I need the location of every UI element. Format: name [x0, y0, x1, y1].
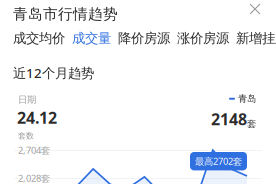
- button[interactable]: 成交量: [72, 30, 111, 46]
- staticText: 2,028套: [18, 172, 50, 184]
- staticText: 降价房源: [118, 30, 170, 46]
- button[interactable]: 降价房源: [118, 30, 170, 46]
- staticText: 涨价房源: [177, 30, 229, 46]
- staticText: 24.12: [17, 107, 57, 128]
- button[interactable]: 成交均价: [13, 30, 65, 46]
- staticText: 最高2702套: [195, 155, 242, 167]
- staticText: 套: [247, 118, 256, 130]
- button[interactable]: 涨价房源: [177, 30, 229, 46]
- staticText: 新增挂牌: [236, 30, 276, 46]
- staticText: 青岛市行情趋势: [13, 5, 118, 23]
- staticText: 成交均价: [13, 30, 65, 46]
- staticText: 青岛: [238, 93, 256, 104]
- staticText: 日期: [18, 94, 36, 105]
- button[interactable]: 新增挂牌: [236, 30, 276, 46]
- staticText: 2,704套: [18, 144, 50, 156]
- staticText: 2148: [211, 108, 247, 130]
- staticText: 近12个月趋势: [13, 64, 94, 82]
- staticText: 套数: [18, 131, 34, 141]
- button[interactable]: 关闭: [246, 0, 264, 18]
- staticText: 成交量: [72, 30, 111, 46]
